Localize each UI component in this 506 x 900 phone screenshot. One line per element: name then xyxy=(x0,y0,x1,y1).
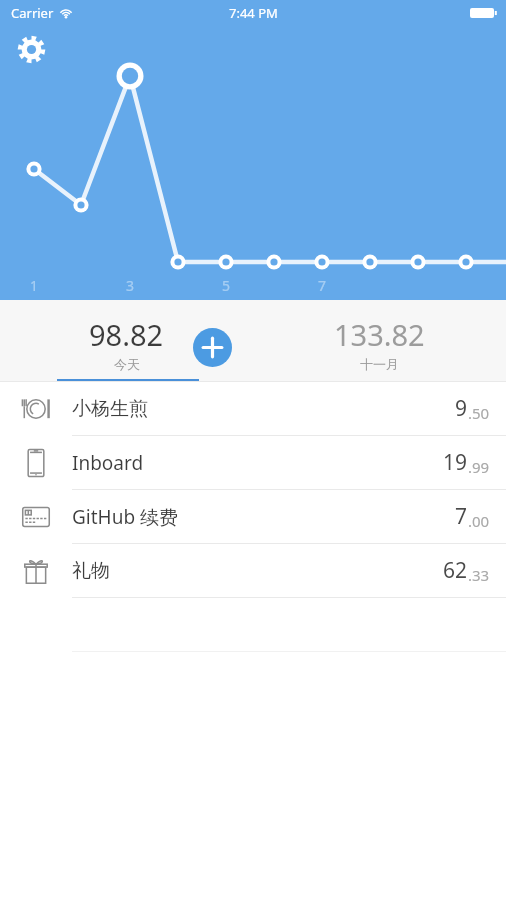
staticText: 今天 xyxy=(114,356,140,372)
staticText: 9 xyxy=(455,394,468,423)
staticText: 7 xyxy=(308,276,336,295)
button[interactable]: GitHub 续费 xyxy=(0,490,506,543)
button[interactable]: 小杨生煎 xyxy=(0,382,506,435)
staticText: 62 xyxy=(443,556,468,585)
staticText: 礼物 xyxy=(72,559,110,583)
button[interactable]: 98.82 xyxy=(0,300,253,382)
staticText: 5 xyxy=(212,276,240,295)
staticText: .33 xyxy=(468,565,490,585)
staticText: 小杨生煎 xyxy=(72,397,148,421)
staticText: 7:44 PM xyxy=(229,4,278,22)
staticText: 1 xyxy=(20,276,48,295)
staticText: GitHub 续费 xyxy=(72,504,179,530)
button[interactable]: Add expense xyxy=(193,328,232,367)
button[interactable]: Settings xyxy=(15,33,48,66)
staticText: .00 xyxy=(468,511,490,531)
button[interactable]: 礼物 xyxy=(0,544,506,597)
staticText: Carrier xyxy=(11,4,54,22)
staticText: Inboard xyxy=(72,450,144,476)
staticText: .50 xyxy=(468,403,490,423)
staticText: 3 xyxy=(116,276,144,295)
staticText: 十一月 xyxy=(360,356,399,372)
button[interactable]: 133.82 xyxy=(253,300,506,382)
staticText: 133.82 xyxy=(334,315,425,354)
staticText: 7 xyxy=(455,502,468,531)
staticText: .99 xyxy=(468,457,490,477)
staticText: 98.82 xyxy=(89,315,164,354)
staticText: 19 xyxy=(443,448,468,477)
button[interactable]: Inboard xyxy=(0,436,506,489)
